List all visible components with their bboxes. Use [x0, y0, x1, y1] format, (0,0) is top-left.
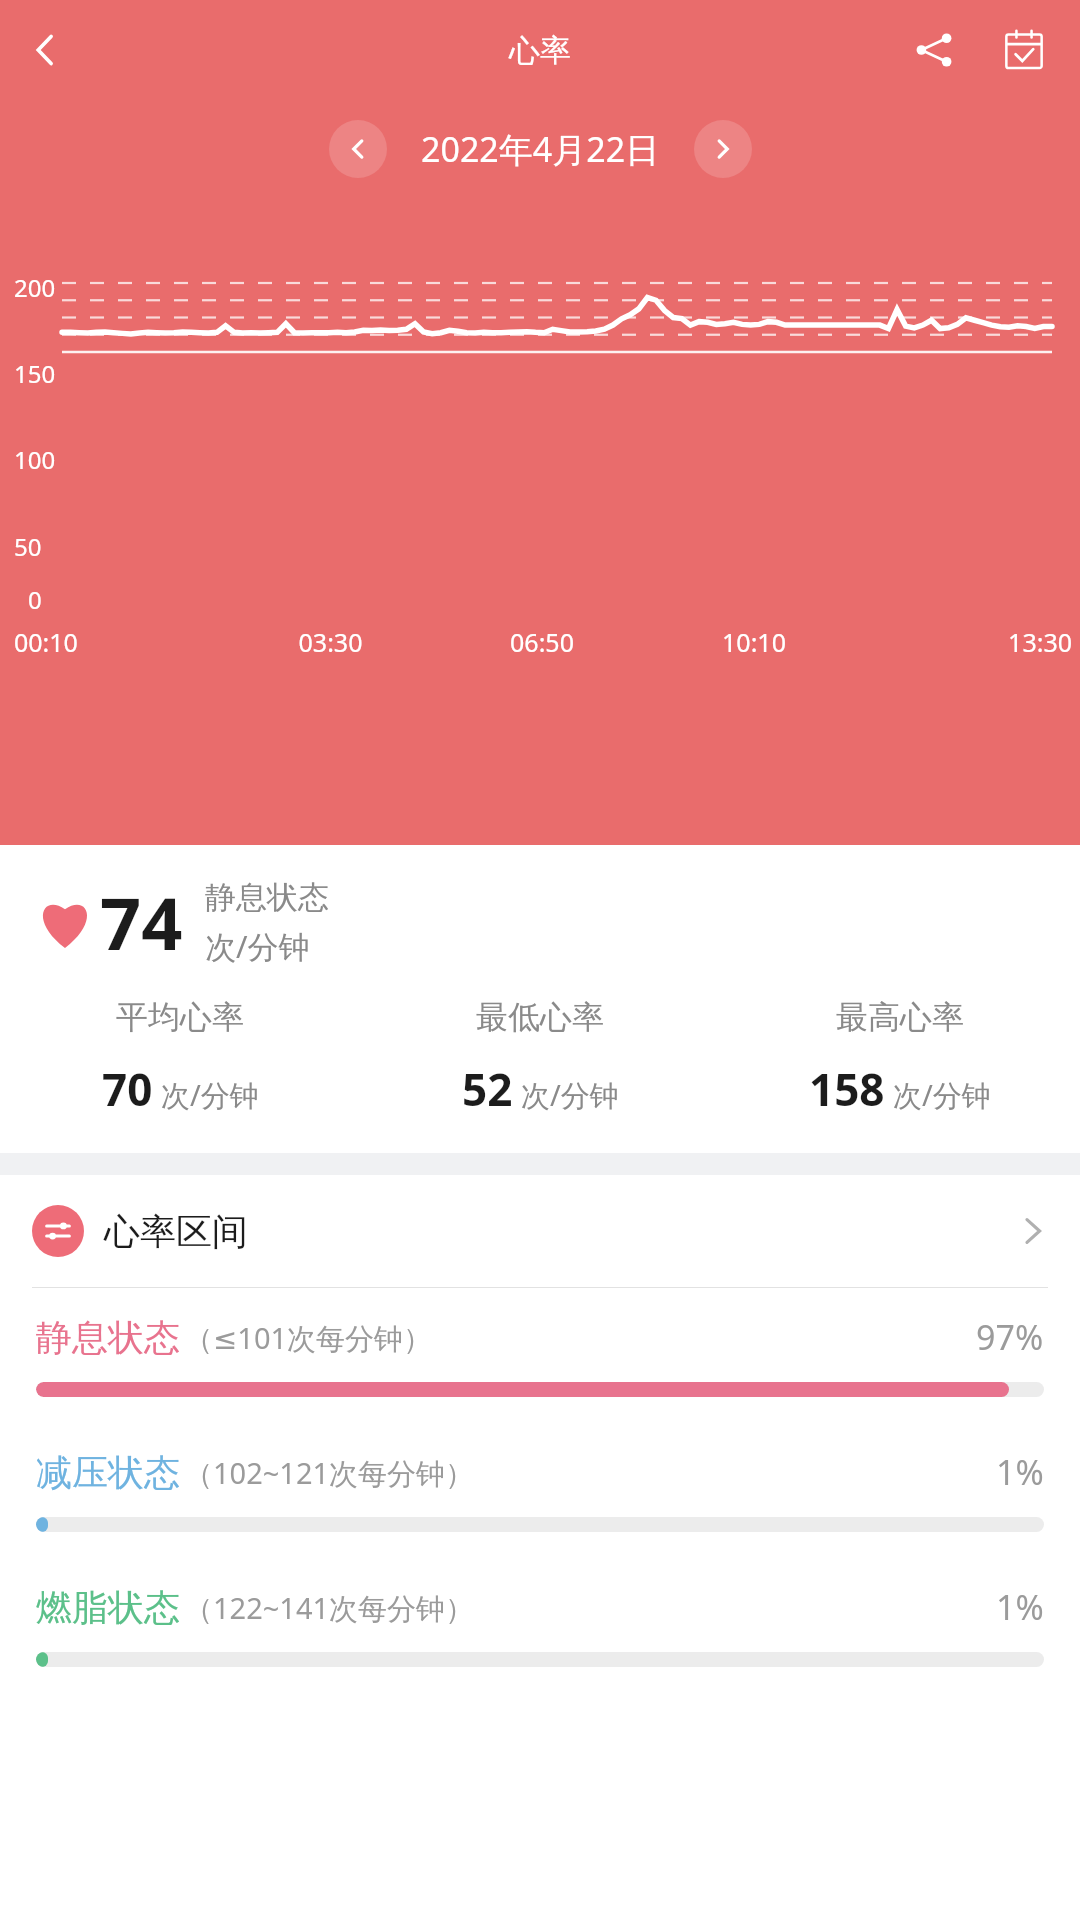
staticText: 次/分钟	[893, 1075, 991, 1115]
staticText: 00:10	[14, 625, 225, 659]
staticText: 静息状态	[36, 1315, 180, 1360]
staticText: 158	[809, 1059, 885, 1119]
button[interactable]: Calendar	[992, 18, 1056, 82]
staticText: （≤101次每分钟）	[184, 1318, 433, 1358]
staticText: 0	[28, 583, 42, 616]
button[interactable]: 减压状态	[0, 1423, 1080, 1558]
staticText: 13:30	[860, 625, 1072, 659]
button[interactable]: Previous day	[329, 120, 387, 178]
staticText: 70	[102, 1059, 153, 1119]
staticText: 次/分钟	[205, 925, 310, 967]
staticText: （122~141次每分钟）	[184, 1588, 475, 1628]
button[interactable]: Share	[902, 18, 966, 82]
staticText: 静息状态	[205, 878, 329, 917]
staticText: 100	[14, 443, 56, 476]
staticText: 次/分钟	[161, 1075, 259, 1115]
button[interactable]: 心率区间	[0, 1175, 1080, 1287]
staticText: 平均心率	[116, 997, 244, 1037]
staticText: 最高心率	[836, 997, 964, 1037]
staticText: 03:30	[225, 625, 436, 659]
staticText: 1%	[996, 1449, 1044, 1495]
staticText: 心率	[509, 31, 571, 70]
button[interactable]: 静息状态	[0, 1288, 1080, 1423]
button[interactable]: Next day	[694, 120, 752, 178]
button[interactable]: 燃脂状态	[0, 1558, 1080, 1693]
staticText: 150	[14, 357, 56, 390]
staticText: 1%	[996, 1584, 1044, 1630]
staticText: 06:50	[436, 625, 648, 659]
staticText: 50	[14, 530, 42, 563]
staticText: （102~121次每分钟）	[184, 1453, 475, 1493]
staticText: 10:10	[648, 625, 860, 659]
staticText: 74	[100, 873, 183, 971]
staticText: 97%	[976, 1314, 1044, 1360]
staticText: 52	[462, 1059, 513, 1119]
button[interactable]: Back	[14, 19, 76, 81]
staticText: 2022年4月22日	[421, 126, 660, 172]
staticText: 200	[14, 271, 56, 304]
staticText: 减压状态	[36, 1450, 180, 1495]
staticText: 心率区间	[104, 1209, 248, 1254]
staticText: 次/分钟	[521, 1075, 619, 1115]
staticText: 燃脂状态	[36, 1585, 180, 1630]
staticText: 最低心率	[476, 997, 604, 1037]
